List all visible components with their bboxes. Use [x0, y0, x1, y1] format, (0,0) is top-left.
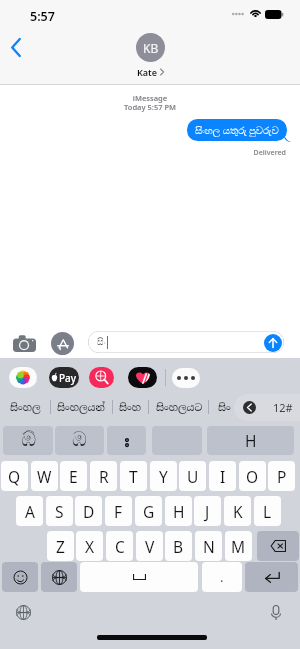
staticText: සිංහ [119, 401, 142, 414]
staticText: 5:57 [30, 8, 55, 25]
button[interactable]: O [239, 461, 266, 491]
staticText: C [115, 536, 125, 557]
staticText: iMessage [0, 93, 300, 103]
button[interactable]: ඹ [55, 426, 104, 455]
button[interactable]: Space [80, 562, 198, 592]
button[interactable]: V [136, 531, 163, 561]
button[interactable]: M [225, 531, 252, 561]
staticText: J [205, 501, 210, 522]
staticText: B [173, 536, 184, 557]
button[interactable]: Back [3, 32, 29, 62]
button[interactable]: App Store [51, 332, 74, 355]
staticText: D [83, 501, 95, 522]
button[interactable]: F [105, 496, 132, 526]
button[interactable]: Y [150, 461, 177, 491]
staticText: Z [56, 536, 65, 557]
button[interactable]: . [202, 562, 242, 592]
button[interactable]: W [31, 461, 58, 491]
button[interactable]: A [16, 496, 43, 526]
button[interactable]: Next keyboard [41, 562, 77, 592]
button[interactable]: K [224, 496, 251, 526]
staticText: T [129, 466, 138, 487]
staticText: F [114, 501, 123, 522]
button[interactable]: H [165, 496, 192, 526]
staticText: සිං [97, 338, 106, 347]
button[interactable]: සිංහලයට [153, 396, 205, 418]
button[interactable]: R [90, 461, 117, 491]
button[interactable]: Return [245, 562, 298, 592]
staticText: Q [8, 466, 21, 487]
button[interactable]: Send [264, 334, 282, 352]
staticText: සිංහල [10, 401, 41, 414]
button[interactable]: Camera [9, 330, 39, 356]
staticText: ඹ් [21, 430, 36, 450]
button[interactable]: B [165, 531, 192, 561]
button[interactable]: සිං [198, 396, 250, 418]
staticText: U [187, 466, 199, 487]
staticText: L [263, 501, 272, 522]
button[interactable]: X [76, 531, 103, 561]
button[interactable]: සිංහල [0, 396, 51, 418]
staticText: I [220, 466, 226, 487]
staticText: KB [143, 40, 159, 56]
staticText: O [246, 466, 259, 487]
button[interactable]: N [195, 531, 222, 561]
button[interactable]: U [179, 461, 206, 491]
button[interactable]: Dictation [265, 601, 287, 623]
staticText: S [55, 501, 64, 522]
staticText: සිංහලයට [156, 401, 203, 414]
staticText: Delivered [0, 148, 286, 158]
button[interactable] [107, 426, 146, 455]
button[interactable]: Digital Touch [128, 367, 157, 388]
button[interactable]: Previous suggestions [243, 401, 256, 414]
button[interactable]: D [75, 496, 102, 526]
button[interactable]: 12# [266, 396, 300, 418]
staticText: Today 5:57 PM [0, 102, 300, 112]
staticText: R [99, 466, 109, 487]
button[interactable]: H [207, 426, 294, 455]
button[interactable]: C [106, 531, 133, 561]
staticText: X [85, 536, 95, 557]
button[interactable]: T [120, 461, 147, 491]
button[interactable]: Images [89, 367, 114, 388]
button[interactable]: E [60, 461, 87, 491]
button[interactable]: KB [120, 33, 180, 78]
button[interactable]: P [268, 461, 295, 491]
button[interactable]: S [46, 496, 73, 526]
staticText: සිංහල යතුරු පුවරුව [195, 123, 279, 137]
staticText: G [143, 501, 155, 522]
button[interactable]: Emoji [2, 562, 38, 592]
staticText: W [37, 466, 52, 487]
staticText: M [231, 536, 246, 557]
button[interactable]: Z [47, 531, 74, 561]
button[interactable]: I [209, 461, 236, 491]
button[interactable]: Q [1, 461, 28, 491]
staticText: H [245, 430, 257, 451]
staticText: සිංහලයන් [57, 401, 105, 414]
button[interactable]: සිං [88, 331, 284, 353]
button[interactable]: සිංහ [104, 396, 156, 418]
button[interactable]: සිංහල යතුරු පුවරුව [187, 119, 287, 141]
button[interactable]: Photos [9, 367, 37, 388]
staticText: ඹ [72, 430, 87, 450]
staticText: A [25, 501, 35, 522]
button[interactable]: More apps [172, 368, 200, 388]
staticText: H [173, 501, 185, 522]
button[interactable]: Change keyboard [12, 601, 34, 623]
staticText: K [233, 501, 243, 522]
staticText: Y [159, 466, 168, 487]
button[interactable]: Backspace [257, 531, 299, 561]
button[interactable]: L [254, 496, 281, 526]
staticText: . [220, 568, 224, 586]
staticText: 12# [273, 400, 293, 415]
button[interactable]: Apple Pay [49, 367, 79, 388]
button[interactable]: J [194, 496, 221, 526]
button[interactable]: සිංහලයන් [55, 396, 107, 418]
staticText: සිං [218, 401, 231, 414]
button[interactable]: G [135, 496, 162, 526]
button[interactable]: ඹ් [3, 426, 53, 455]
staticText: V [145, 536, 155, 557]
staticText: N [203, 536, 215, 557]
staticText: Pay [59, 371, 77, 385]
